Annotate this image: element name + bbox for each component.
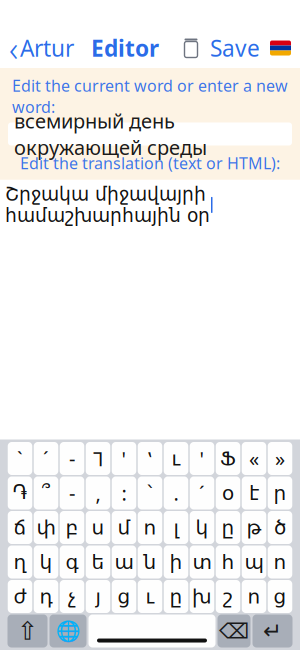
staticText: մ: [117, 516, 130, 539]
button[interactable]: տ: [190, 545, 214, 578]
button[interactable]: »: [268, 442, 292, 475]
button[interactable]: ,: [86, 476, 110, 509]
staticText: պ: [244, 551, 263, 573]
staticText: օ: [222, 482, 234, 504]
button[interactable]: փ: [34, 511, 58, 544]
button[interactable]: գ: [60, 545, 84, 578]
button[interactable]: Next keyboard: [49, 614, 86, 647]
button[interactable]: ո: [138, 511, 162, 544]
button[interactable]: ա: [112, 545, 136, 578]
button[interactable]: «: [242, 442, 266, 475]
staticText: ը: [169, 585, 182, 608]
staticText: »: [275, 445, 285, 472]
button[interactable]: կ: [34, 545, 58, 578]
staticText: խ: [192, 585, 212, 608]
staticText: փ: [36, 516, 55, 539]
button[interactable]: ի: [164, 545, 188, 578]
staticText: ': [121, 445, 126, 472]
button[interactable]: `: [8, 442, 32, 475]
staticText: Edit the current word or enter a new wor…: [12, 75, 288, 117]
staticText: է: [249, 482, 259, 504]
button[interactable]: .: [164, 476, 188, 509]
staticText: ա: [114, 551, 133, 573]
staticText: Save: [210, 33, 260, 63]
button[interactable]: :: [112, 476, 136, 509]
button[interactable]: ‛: [138, 442, 162, 475]
button[interactable]: ՝: [138, 476, 162, 509]
button[interactable]: ժ: [8, 580, 32, 613]
button[interactable]: շ: [216, 580, 240, 613]
button[interactable]: յ: [86, 580, 110, 613]
button[interactable]: ': [190, 442, 214, 475]
staticText: ՞: [42, 482, 50, 504]
staticText: -: [69, 445, 75, 472]
button[interactable]: լ: [164, 511, 188, 544]
button[interactable]: ֏: [8, 476, 32, 509]
button[interactable]: ´: [190, 476, 214, 509]
button[interactable]: Ꞁ: [86, 442, 110, 475]
button[interactable]: ւ: [138, 580, 162, 613]
button[interactable]: կ: [190, 511, 214, 544]
staticText: ´: [199, 480, 205, 506]
staticText: -: [69, 480, 75, 506]
button[interactable]: Delete: [217, 614, 250, 647]
button[interactable]: ‹: [0, 31, 74, 65]
button[interactable]: ը: [216, 511, 240, 544]
staticText: ո: [273, 551, 286, 573]
button[interactable]: ՞: [34, 476, 58, 509]
staticText: թ: [246, 516, 261, 539]
staticText: շ: [223, 585, 233, 608]
staticText: գ: [65, 551, 78, 573]
button[interactable]: Shift: [7, 614, 47, 647]
button[interactable]: դ: [34, 580, 58, 613]
button[interactable]: ւ: [164, 442, 188, 475]
button[interactable]: ո: [268, 545, 292, 578]
staticText: ր: [273, 482, 286, 504]
button[interactable]: թ: [242, 511, 266, 544]
staticText: ժ: [13, 585, 26, 608]
staticText: :: [121, 480, 126, 506]
staticText: կ: [39, 551, 52, 573]
button[interactable]: Return: [252, 614, 292, 647]
button[interactable]: ն: [138, 545, 162, 578]
staticText: Շրջակա միջավայրի համաշխարհային օր: [5, 184, 210, 226]
button[interactable]: ճ: [8, 511, 32, 544]
button[interactable]: ': [112, 442, 136, 475]
staticText: լ: [173, 516, 178, 539]
button[interactable]: -: [60, 442, 84, 475]
button[interactable]: բ: [60, 511, 84, 544]
button[interactable]: Ֆ: [216, 442, 240, 475]
staticText: տ: [192, 551, 211, 573]
button[interactable]: ս: [86, 511, 110, 544]
button[interactable]: ց: [268, 580, 292, 613]
staticText: ճ: [13, 516, 26, 539]
button[interactable]: է: [242, 476, 266, 509]
staticText: ւ: [145, 585, 154, 608]
button[interactable]: պ: [242, 545, 266, 578]
staticText: `: [17, 445, 23, 472]
button[interactable]: չ: [60, 580, 84, 613]
button[interactable]: մ: [112, 511, 136, 544]
button[interactable]: ը: [164, 580, 188, 613]
button[interactable]: ´: [34, 442, 58, 475]
button[interactable]: ե: [86, 545, 110, 578]
button[interactable]: խ: [190, 580, 214, 613]
button[interactable]: հ: [216, 545, 240, 578]
button[interactable]: օ: [216, 476, 240, 509]
button[interactable]: ծ: [268, 511, 292, 544]
button[interactable]: ր: [268, 476, 292, 509]
button[interactable]: Delete: [176, 31, 206, 65]
button[interactable]: Language: [264, 40, 297, 55]
button[interactable]: -: [60, 476, 84, 509]
button[interactable]: ց: [112, 580, 136, 613]
staticText: ը: [221, 516, 234, 539]
staticText: հ: [221, 551, 234, 573]
staticText: Editor: [91, 33, 159, 63]
button[interactable]: ո: [242, 580, 266, 613]
staticText: ': [199, 445, 204, 472]
button[interactable]: Space: [88, 614, 215, 647]
button[interactable]: Save: [206, 31, 264, 65]
staticText: բ: [65, 516, 78, 539]
staticText: 🌐: [55, 620, 80, 642]
button[interactable]: ղ: [8, 545, 32, 578]
